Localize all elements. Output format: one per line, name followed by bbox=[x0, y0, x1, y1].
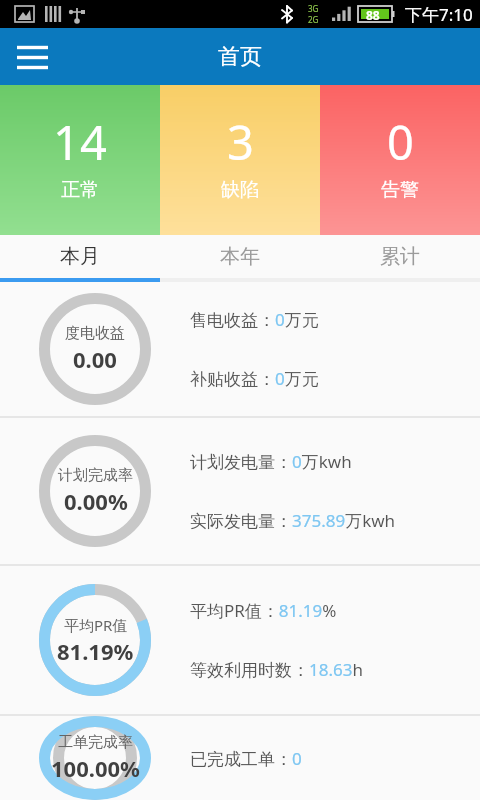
staticText: 累计 bbox=[380, 244, 420, 269]
button[interactable]: 平均PR值 bbox=[0, 566, 480, 714]
button[interactable]: 3 bbox=[160, 85, 320, 235]
staticText: 14 bbox=[53, 110, 107, 174]
staticText: 缺陷 bbox=[221, 178, 259, 202]
staticText: 度电收益 bbox=[65, 324, 125, 343]
button[interactable]: 累计 bbox=[320, 235, 480, 278]
button[interactable]: Menu bbox=[6, 31, 58, 83]
staticText: 已完成工单：0 bbox=[190, 747, 302, 770]
staticText: 3G bbox=[308, 3, 319, 14]
staticText: 100.00% bbox=[51, 753, 140, 783]
staticText: 0.00% bbox=[64, 486, 128, 516]
button[interactable]: 工单完成率 bbox=[0, 716, 480, 800]
staticText: 平均PR值 bbox=[64, 615, 128, 635]
staticText: 售电收益：0万元 bbox=[190, 308, 319, 331]
staticText: 2G bbox=[308, 14, 319, 25]
staticText: 正常 bbox=[61, 178, 99, 202]
staticText: 等效利用时数：18.63h bbox=[190, 658, 363, 681]
staticText: 计划完成率 bbox=[58, 466, 133, 485]
button[interactable]: 14 bbox=[0, 85, 160, 235]
staticText: 88 bbox=[366, 7, 380, 23]
button[interactable]: 度电收益 bbox=[0, 282, 480, 416]
button[interactable]: 0 bbox=[320, 85, 480, 235]
staticText: 补贴收益：0万元 bbox=[190, 367, 319, 390]
staticText: 本年 bbox=[220, 244, 260, 269]
staticText: 下午7:10 bbox=[405, 3, 473, 26]
button[interactable]: 本月 bbox=[0, 235, 160, 278]
button[interactable]: 本年 bbox=[160, 235, 320, 278]
staticText: 3 bbox=[227, 110, 254, 174]
staticText: 平均PR值：81.19% bbox=[190, 599, 337, 622]
staticText: 0 bbox=[387, 110, 414, 174]
staticText: 工单完成率 bbox=[58, 733, 133, 752]
staticText: 计划发电量：0万kwh bbox=[190, 450, 352, 473]
button[interactable]: 计划完成率 bbox=[0, 418, 480, 564]
staticText: 告警 bbox=[381, 178, 419, 202]
staticText: 实际发电量：375.89万kwh bbox=[190, 509, 396, 532]
staticText: 本月 bbox=[60, 244, 100, 269]
staticText: 首页 bbox=[218, 43, 262, 71]
staticText: 0.00 bbox=[73, 344, 117, 374]
staticText: 81.19% bbox=[57, 636, 134, 666]
